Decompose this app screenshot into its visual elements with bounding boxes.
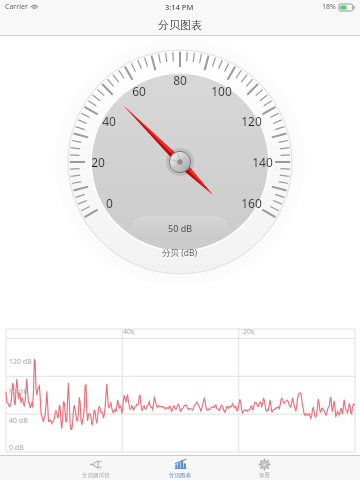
staticText: Carrier [5,2,28,12]
other: 分贝测试仪 [90,458,103,471]
staticText: 120 [241,113,262,129]
staticText: 分贝图表 [158,18,202,32]
staticText: 分贝 (dB) [162,247,198,259]
staticText: 80 [173,72,187,88]
staticText: 18% [322,2,336,12]
staticText: 0 dB [9,443,24,453]
staticText: 160 [241,195,262,211]
staticText: 50 dB [168,222,193,234]
button[interactable]: 分贝图表 [153,456,207,480]
staticText: 40 [102,113,116,129]
other: 分贝图表 [174,458,187,471]
staticText: 分贝图表 [169,472,191,479]
button[interactable]: 分贝测试仪 [69,456,123,480]
staticText: 40 dB [9,416,28,426]
other: 设置 [258,458,271,471]
staticText: 0 [106,195,113,211]
staticText: 140 [252,154,273,170]
staticText: 60 [132,83,146,99]
button[interactable]: 设置 [237,456,291,480]
staticText: 120 dB [9,357,32,367]
staticText: 分贝测试仪 [82,472,110,479]
staticText: 100 [211,83,232,99]
staticText: 设置 [259,472,270,479]
button[interactable]: 50 dB [132,216,228,240]
staticText: 3:14 PM [165,2,194,12]
staticText: 20s [243,327,255,337]
staticText: 80 dB [9,387,28,397]
staticText: 20 [91,154,105,170]
staticText: 40s [123,327,135,337]
